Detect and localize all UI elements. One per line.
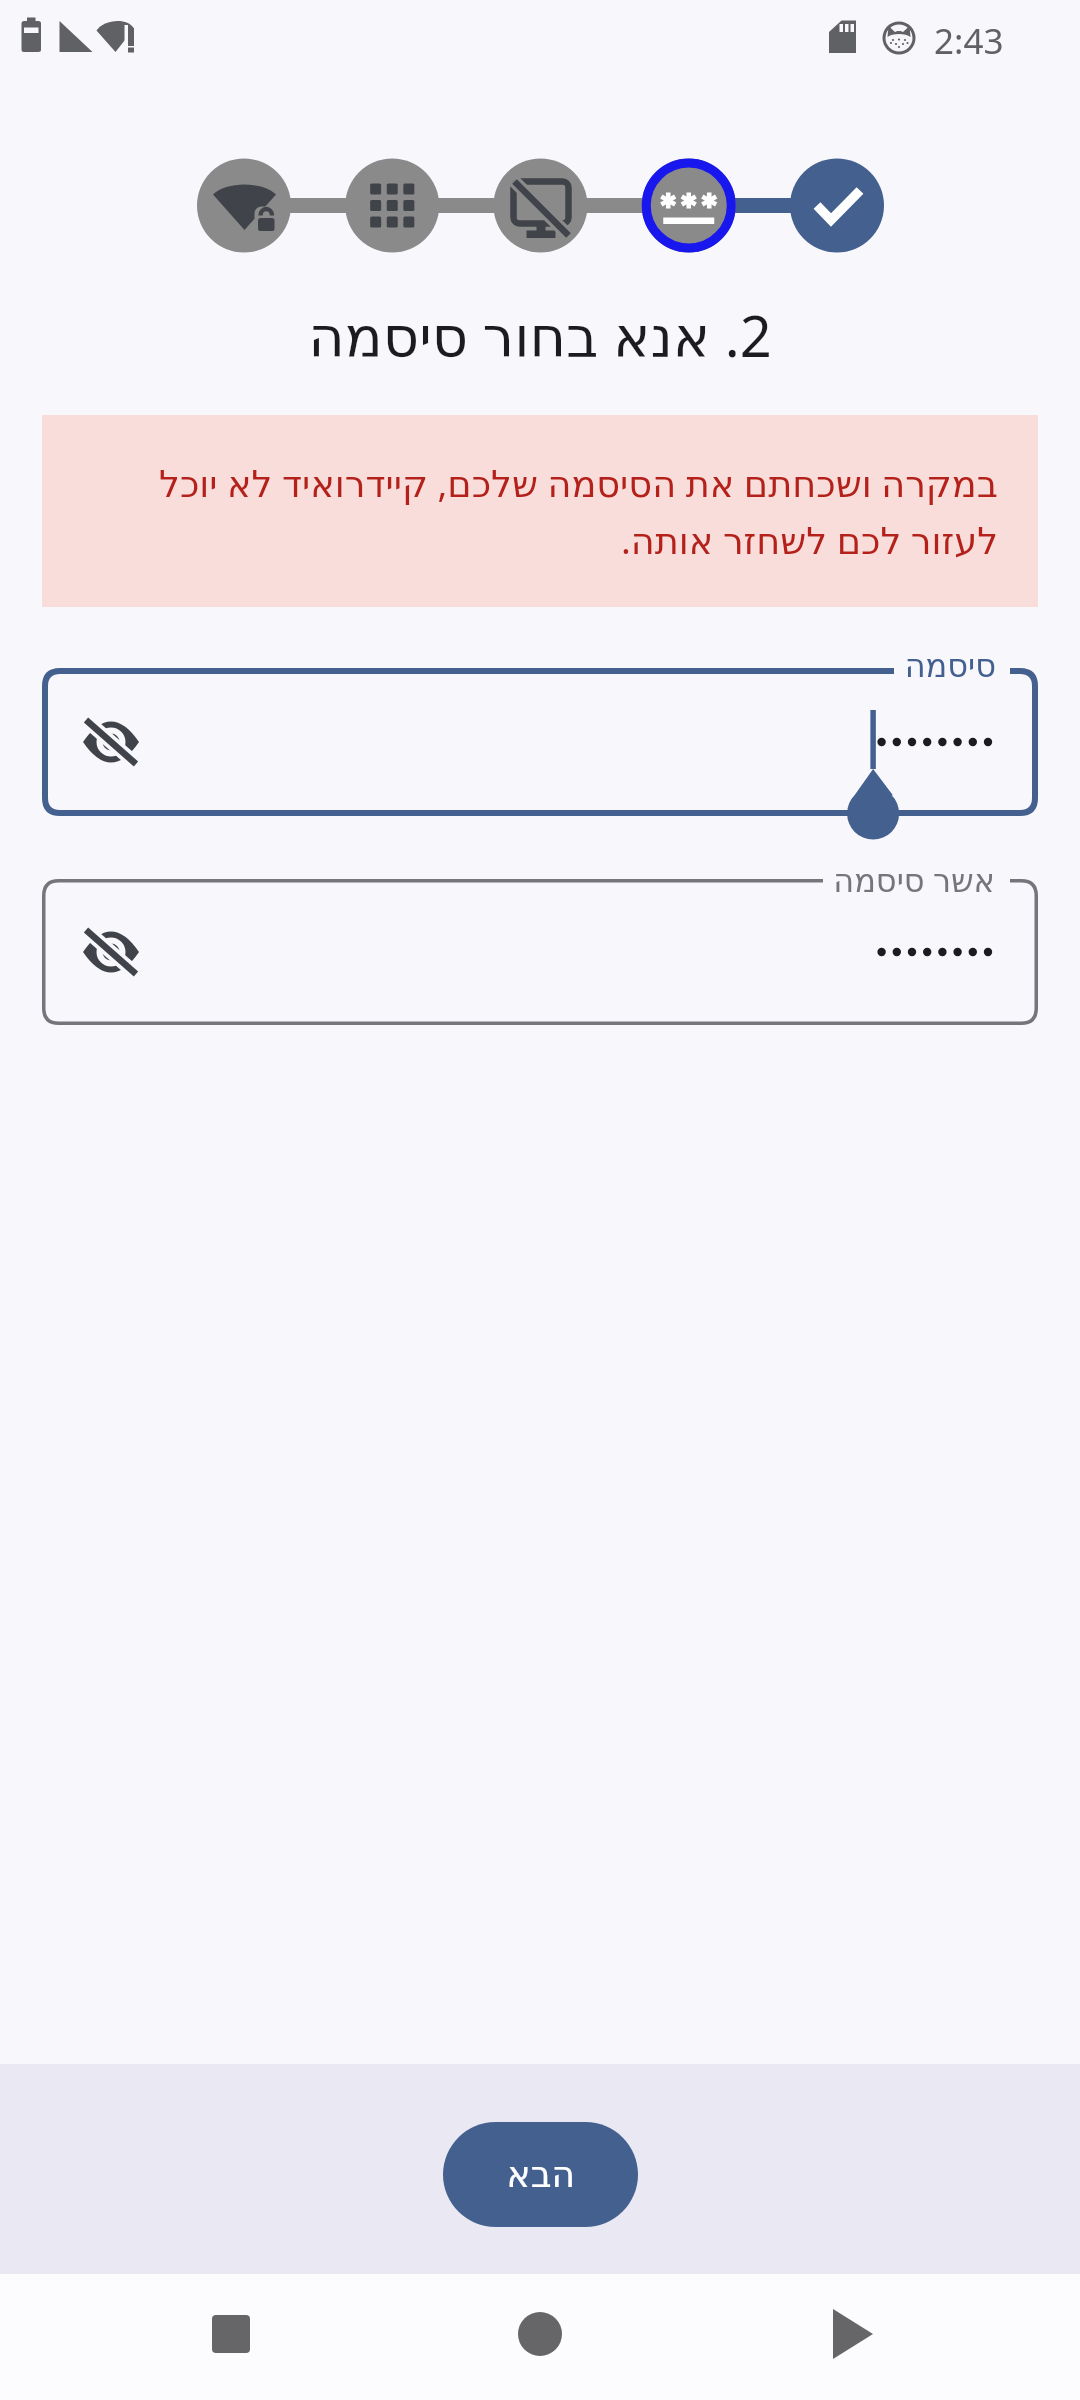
button[interactable]: Wi-Fi step [197, 159, 291, 253]
button[interactable]: Password step [642, 159, 736, 253]
button[interactable]: Toggle password visibility [77, 708, 145, 776]
button[interactable]: הבא [443, 2122, 638, 2227]
staticText: סיסמה [904, 647, 996, 684]
staticText: הבא [506, 2154, 575, 2196]
button[interactable]: Back [793, 2293, 913, 2375]
button[interactable]: Apps step [345, 159, 439, 253]
button[interactable]: Toggle password visibility [42, 879, 1038, 1025]
button[interactable]: Recent apps [171, 2293, 291, 2375]
button[interactable]: Finish step [790, 159, 884, 253]
staticText: 2:43 [934, 17, 1004, 65]
button[interactable]: Toggle password visibility [77, 918, 145, 986]
button[interactable]: Toggle password visibility [42, 668, 1038, 816]
button[interactable]: Home [480, 2293, 600, 2375]
staticText: 2. אנא בחור סיסמה [0, 297, 1080, 373]
staticText: במקרה ושכחתם את הסיסמה שלכם, קיידרואיד ל… [102, 458, 998, 565]
staticText: אשר סיסמה [833, 858, 995, 902]
button[interactable]: Screen step [494, 159, 588, 253]
